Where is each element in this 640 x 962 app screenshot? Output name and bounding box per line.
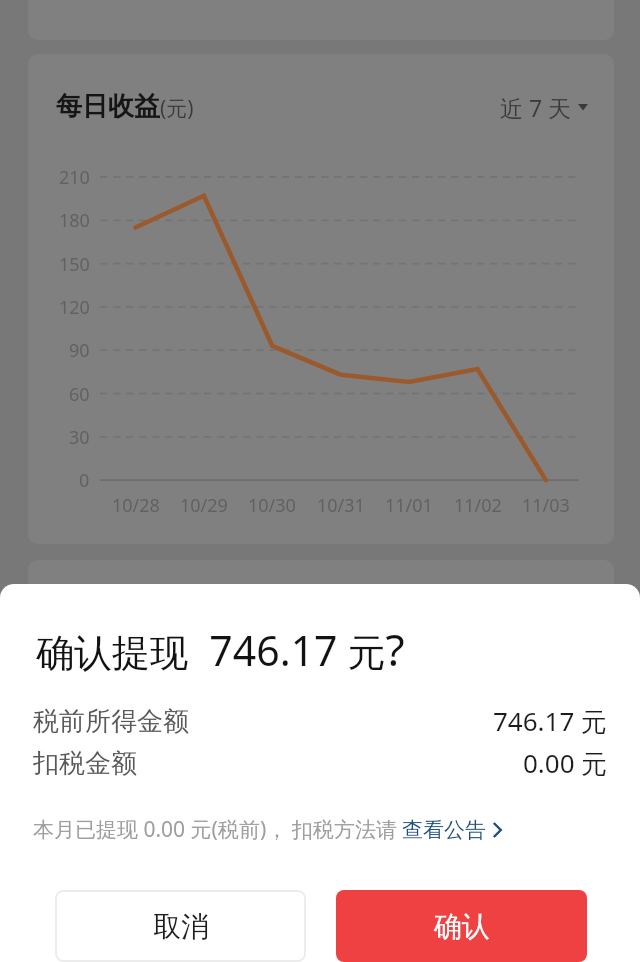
staticText: 150: [59, 252, 90, 277]
staticText: 10/31: [317, 493, 365, 518]
button[interactable]: 查看公告: [402, 817, 502, 843]
staticText: 30: [69, 425, 90, 450]
staticText: 0.00 元: [523, 745, 608, 781]
staticText: 210: [59, 165, 90, 190]
button[interactable]: 确认: [336, 890, 587, 962]
staticText: 11/02: [454, 493, 502, 518]
staticText: 每日收益: [56, 90, 160, 123]
staticText: 税前所得金额: [33, 705, 189, 738]
staticText: 取消: [153, 909, 209, 944]
button[interactable]: 近 7 天: [500, 92, 588, 123]
staticText: 11/01: [385, 493, 433, 518]
staticText: 查看公告: [402, 817, 486, 843]
staticText: 10/28: [112, 493, 160, 518]
staticText: 120: [59, 295, 90, 320]
staticText: 0: [79, 468, 90, 493]
staticText: 90: [69, 338, 90, 363]
staticText: 确认提现 746.17 元?: [36, 619, 405, 679]
staticText: 确认: [434, 909, 490, 944]
staticText: 60: [69, 382, 90, 407]
staticText: 扣税金额: [33, 747, 137, 780]
staticText: 本月已提现 0.00 元(税前)，: [33, 815, 288, 844]
staticText: 746.17 元: [493, 703, 608, 739]
staticText: (元): [160, 94, 194, 123]
staticText: 近 7 天: [500, 92, 572, 123]
staticText: 10/29: [180, 493, 228, 518]
staticText: 180: [59, 208, 90, 233]
staticText: 10/30: [248, 493, 296, 518]
staticText: 11/03: [522, 493, 570, 518]
staticText: 扣税方法请: [292, 817, 397, 843]
button[interactable]: 取消: [55, 890, 306, 962]
